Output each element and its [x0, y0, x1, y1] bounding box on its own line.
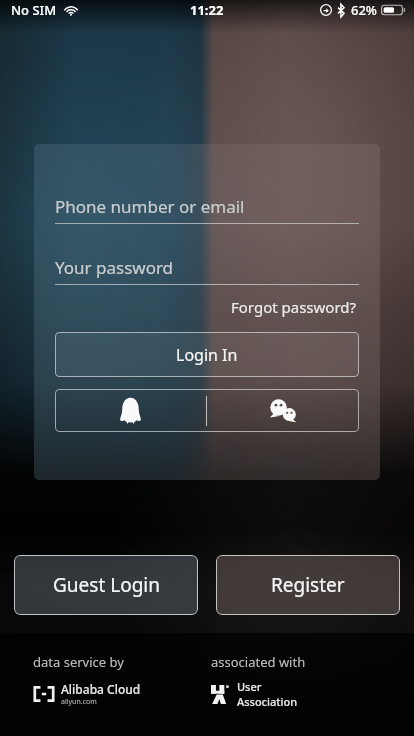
staticText: 62%: [351, 1, 377, 19]
button[interactable]: Sign in with QQ: [55, 389, 206, 432]
staticText: Login In: [176, 344, 238, 366]
staticText: 11:22: [190, 1, 224, 19]
staticText: Guest Login: [53, 572, 160, 598]
button[interactable]: Sign in with WeChat: [207, 389, 359, 432]
button[interactable]: Login In: [55, 332, 359, 377]
staticText: associated with: [211, 653, 306, 671]
staticText: aliyun.com: [61, 697, 97, 707]
staticText: Register: [271, 572, 345, 598]
staticText: Phone number or email: [55, 195, 245, 218]
staticText: No SIM: [11, 1, 57, 19]
button[interactable]: Forgot password?: [229, 295, 359, 319]
button[interactable]: Register: [216, 555, 400, 615]
staticText: Forgot password?: [231, 297, 357, 317]
staticText: Association: [237, 694, 298, 709]
staticText: Alibaba Cloud: [61, 681, 141, 697]
staticText: User: [237, 679, 262, 694]
button[interactable]: User Association: [211, 679, 298, 709]
button[interactable]: Alibaba Cloud: [33, 681, 141, 707]
staticText: Your password: [55, 256, 174, 279]
button[interactable]: Phone number or email: [55, 192, 359, 224]
button[interactable]: Your password: [55, 253, 359, 285]
button[interactable]: Guest Login: [14, 555, 198, 615]
staticText: data service by: [33, 653, 124, 671]
